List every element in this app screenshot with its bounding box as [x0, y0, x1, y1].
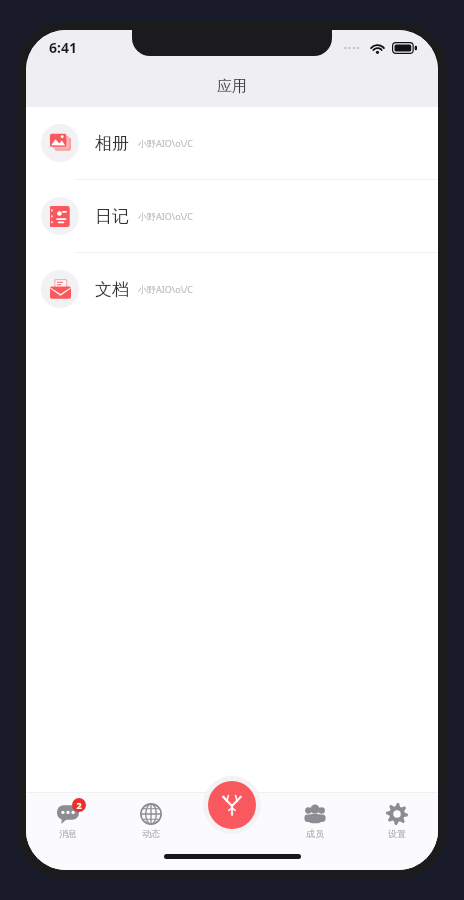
- staticText: 小野AIO\o\/C: [138, 210, 194, 222]
- staticText: 文档: [95, 279, 129, 300]
- staticText: 日记: [95, 206, 129, 227]
- staticText: 成员: [306, 828, 324, 839]
- staticText: 6:41: [49, 38, 77, 57]
- staticText: 相册: [95, 133, 129, 154]
- staticText: 动态: [142, 828, 160, 839]
- staticText: 应用: [217, 77, 247, 96]
- button[interactable]: 动态: [109, 798, 192, 844]
- button[interactable]: Create: [208, 781, 256, 829]
- button[interactable]: 设置: [356, 798, 438, 844]
- button[interactable]: 日记: [26, 180, 438, 252]
- staticText: 小野AIO\o\/C: [138, 137, 194, 149]
- staticText: 小野AIO\o\/C: [138, 283, 194, 295]
- staticText: 设置: [388, 828, 406, 839]
- button[interactable]: 成员: [274, 798, 356, 844]
- staticText: 消息: [59, 828, 77, 839]
- button[interactable]: 文档: [26, 253, 438, 325]
- button[interactable]: 相册: [26, 107, 438, 179]
- staticText: 2: [76, 799, 82, 811]
- button[interactable]: 2: [26, 798, 109, 844]
